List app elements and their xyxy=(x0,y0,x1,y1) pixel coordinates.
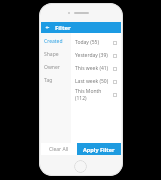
button[interactable]: Back xyxy=(41,22,121,33)
staticText: Shape xyxy=(44,51,59,58)
staticText: Last week (50) xyxy=(75,78,109,85)
button[interactable]: Clear All xyxy=(41,143,77,155)
staticText: Yesterday (39) xyxy=(75,52,108,59)
button[interactable]: Apply Filter xyxy=(77,143,121,155)
button[interactable]: This week (41) xyxy=(71,62,121,75)
staticText: Tag xyxy=(44,77,53,84)
staticText: Today (55) xyxy=(75,39,99,46)
staticText: Apply Filter xyxy=(83,146,115,153)
button[interactable]: Last week (50) xyxy=(71,75,121,88)
staticText: This week (41) xyxy=(75,65,109,72)
button[interactable]: Created xyxy=(41,35,71,48)
button[interactable]: Back xyxy=(44,24,51,31)
button[interactable]: Owner xyxy=(41,61,71,74)
staticText: Owner xyxy=(44,64,60,71)
button[interactable]: Home xyxy=(74,160,87,173)
button[interactable]: Shape xyxy=(41,48,71,61)
staticText: Created xyxy=(44,38,63,45)
staticText: Filter xyxy=(55,24,71,32)
staticText: This Month (112) xyxy=(75,88,113,101)
button[interactable]: Yesterday (39) xyxy=(71,49,121,62)
button[interactable]: Tag xyxy=(41,74,71,87)
button[interactable]: This Month (112) xyxy=(71,88,121,101)
staticText: Clear All xyxy=(49,146,69,153)
button[interactable]: Today (55) xyxy=(71,36,121,49)
